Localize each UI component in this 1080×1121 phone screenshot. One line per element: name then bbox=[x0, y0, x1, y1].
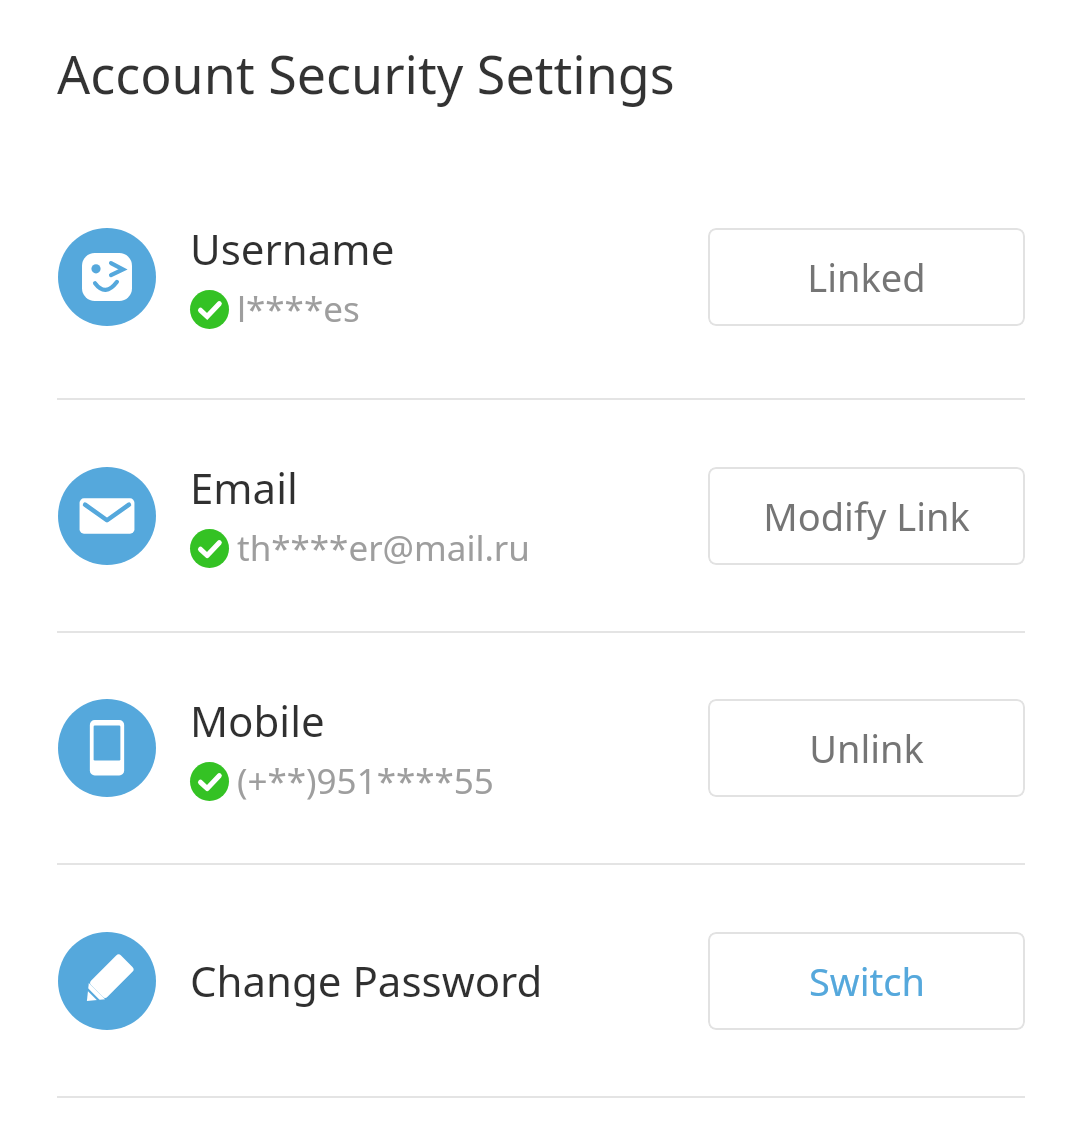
staticText: th****er@mail.ru bbox=[237, 524, 530, 572]
button[interactable]: Mobile bbox=[0, 633, 1080, 863]
staticText: Change Password bbox=[190, 952, 543, 1009]
staticText: Modify Link bbox=[763, 490, 970, 542]
other: Email bbox=[58, 467, 156, 565]
staticText: Linked bbox=[807, 251, 926, 303]
button[interactable]: Modify Link bbox=[708, 467, 1025, 565]
button[interactable]: Unlink bbox=[708, 699, 1025, 797]
other: Username bbox=[58, 228, 156, 326]
staticText: l****es bbox=[237, 285, 360, 333]
button[interactable]: Switch bbox=[708, 932, 1025, 1030]
staticText: Email bbox=[190, 459, 298, 516]
staticText: (+**)951****55 bbox=[237, 757, 494, 805]
button[interactable]: Linked bbox=[708, 228, 1025, 326]
staticText: Unlink bbox=[809, 722, 924, 774]
other: Change Password bbox=[58, 932, 156, 1030]
staticText: Mobile bbox=[190, 692, 325, 749]
other: Mobile bbox=[58, 699, 156, 797]
button[interactable]: Email bbox=[0, 400, 1080, 631]
staticText: Username bbox=[190, 220, 395, 277]
button[interactable]: Username bbox=[0, 155, 1080, 398]
button[interactable]: Change Password bbox=[0, 865, 1080, 1096]
staticText: Switch bbox=[809, 955, 925, 1007]
staticText: Account Security Settings bbox=[57, 38, 675, 109]
